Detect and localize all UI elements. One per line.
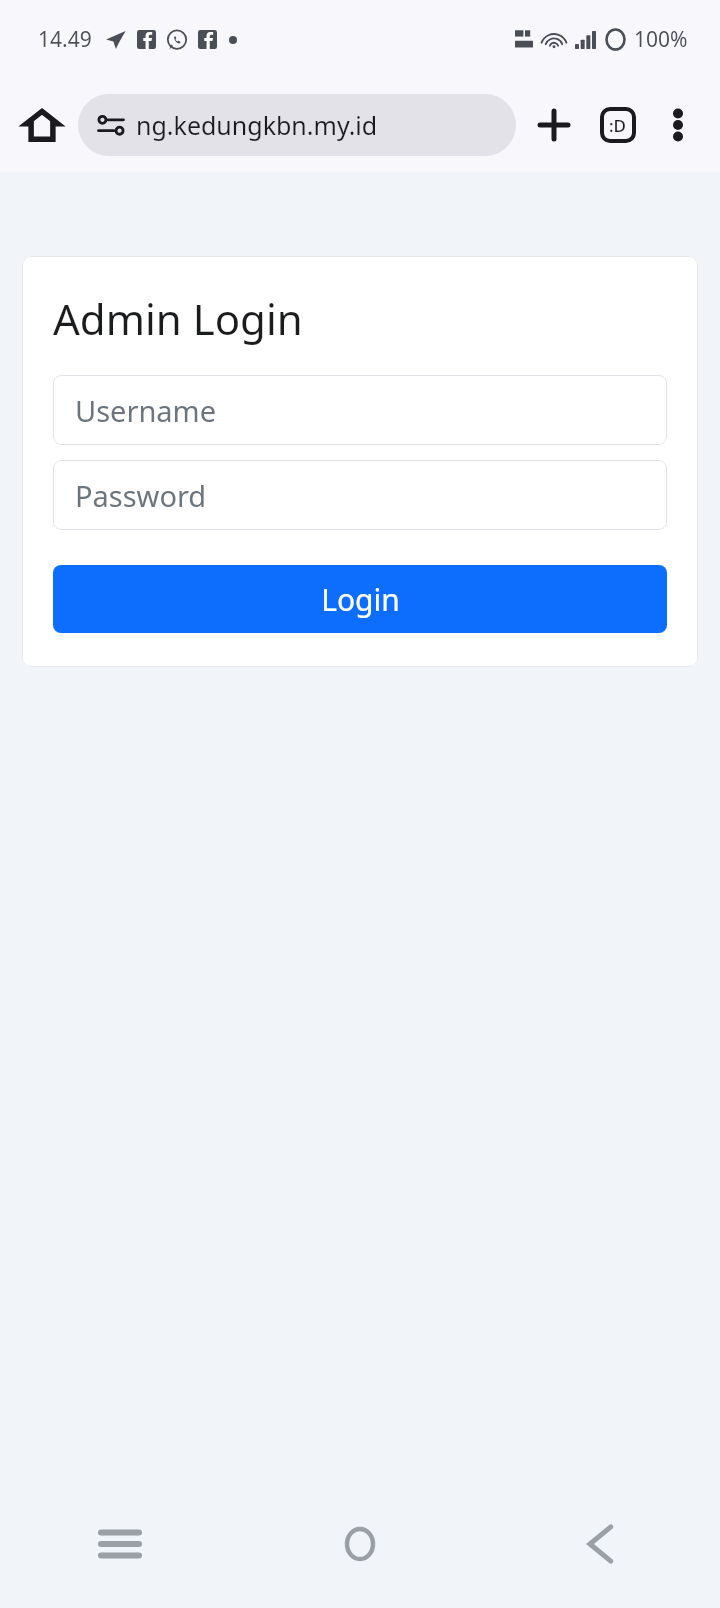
staticText: ng.kedungkbn.my.id (136, 108, 378, 142)
staticText: Password (75, 476, 207, 515)
button[interactable]: Password (53, 460, 667, 530)
button[interactable]: New tab (526, 97, 582, 153)
button[interactable]: Recent apps (0, 1480, 240, 1608)
staticText: 100% (634, 25, 688, 54)
staticText: Admin Login (53, 290, 303, 347)
staticText: 14.49 (38, 25, 92, 54)
button[interactable]: More options (650, 97, 706, 153)
button[interactable]: Tabs (590, 97, 646, 153)
button[interactable]: ng.kedungkbn.my.id (78, 94, 516, 156)
button[interactable]: Back (480, 1480, 720, 1608)
button[interactable]: Login (53, 565, 667, 633)
button[interactable]: Username (53, 375, 667, 445)
button[interactable]: Home (240, 1480, 480, 1608)
staticText: Username (75, 391, 217, 430)
staticText: :D (609, 114, 627, 137)
button[interactable]: Home (14, 97, 70, 153)
staticText: Login (321, 579, 400, 620)
